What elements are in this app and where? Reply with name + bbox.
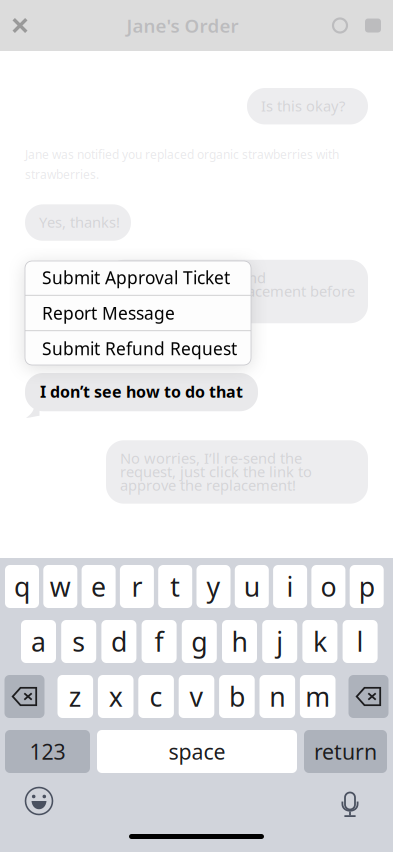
staticText: e	[91, 569, 106, 604]
button[interactable]: t	[158, 565, 192, 608]
button[interactable]: v	[179, 675, 214, 718]
staticText: return	[314, 737, 377, 766]
staticText: m	[305, 679, 330, 714]
staticText: Jane's Order	[126, 13, 238, 38]
staticText: Report Message	[42, 301, 175, 324]
staticText: u	[244, 569, 260, 604]
button[interactable]: q	[5, 565, 39, 608]
staticText: Submit Approval Ticket	[42, 266, 230, 289]
staticText: x	[109, 679, 123, 714]
button[interactable]: p	[350, 565, 384, 608]
button[interactable]: b	[219, 675, 255, 718]
button[interactable]: a	[21, 620, 56, 663]
button[interactable]: m	[300, 675, 335, 718]
button[interactable]: k	[302, 620, 337, 663]
staticText: g	[191, 624, 207, 659]
staticText: z	[69, 679, 82, 714]
staticText: Yes, thanks!	[39, 212, 120, 232]
staticText: k	[313, 624, 327, 659]
staticText: q	[14, 569, 30, 604]
staticText: 123	[29, 737, 65, 766]
button[interactable]: Close	[0, 5, 40, 45]
button[interactable]: l	[343, 620, 378, 663]
staticText: c	[150, 679, 163, 714]
staticText: Hey, would you mind approving the replac…	[120, 268, 355, 314]
staticText: d	[111, 624, 127, 659]
button[interactable]: Submit Approval Ticket	[25, 260, 251, 295]
button[interactable]: return	[304, 730, 387, 773]
button[interactable]: Submit Refund Request	[25, 331, 251, 366]
button[interactable]: y	[196, 565, 230, 608]
staticText: h	[231, 624, 247, 659]
button[interactable]: Emoji keyboard	[0, 785, 53, 817]
staticText: j	[276, 624, 283, 659]
staticText: r	[131, 569, 142, 604]
button[interactable]: r	[120, 565, 154, 608]
button[interactable]: j	[262, 620, 297, 663]
staticText: strawberries.	[25, 166, 99, 182]
staticText: o	[320, 569, 336, 604]
button[interactable]: Messages	[355, 6, 393, 44]
staticText: s	[72, 624, 85, 659]
button[interactable]: d	[101, 620, 136, 663]
staticText: t	[170, 569, 180, 604]
button[interactable]: o	[311, 565, 345, 608]
staticText: n	[269, 679, 285, 714]
button[interactable]: i	[273, 565, 307, 608]
staticText: y	[206, 569, 220, 604]
button[interactable]: e	[82, 565, 116, 608]
button[interactable]: Delete	[4, 675, 44, 718]
staticText: space	[168, 737, 225, 766]
staticText: f	[155, 624, 164, 659]
button[interactable]: s	[61, 620, 96, 663]
staticText: b	[229, 679, 245, 714]
button[interactable]: Report Message	[25, 296, 251, 330]
staticText: p	[359, 569, 375, 604]
staticText: l	[357, 624, 364, 659]
button[interactable]: x	[98, 675, 133, 718]
button[interactable]: 123	[5, 730, 90, 773]
button[interactable]: Dictate	[339, 785, 393, 816]
button[interactable]: z	[57, 675, 93, 718]
staticText: a	[31, 624, 46, 659]
staticText: w	[50, 569, 71, 604]
button[interactable]: u	[235, 565, 269, 608]
button[interactable]: w	[43, 565, 77, 608]
button[interactable]: c	[138, 675, 174, 718]
button[interactable]: f	[142, 620, 177, 663]
button[interactable]: g	[182, 620, 217, 663]
staticText: I don’t see how to do that	[40, 381, 243, 402]
button[interactable]: space	[97, 730, 297, 773]
button[interactable]: Order details	[325, 6, 355, 44]
button[interactable]: h	[222, 620, 257, 663]
staticText: i	[287, 569, 294, 604]
staticText: No worries, I’ll re-send the request, ju…	[120, 448, 312, 495]
button[interactable]: n	[259, 675, 295, 718]
staticText: Submit Refund Request	[42, 337, 237, 360]
staticText: v	[189, 679, 203, 714]
staticText: Jane was notified you replaced organic s…	[25, 146, 339, 162]
button[interactable]: Delete	[348, 675, 388, 718]
staticText: Is this okay?	[261, 96, 345, 115]
